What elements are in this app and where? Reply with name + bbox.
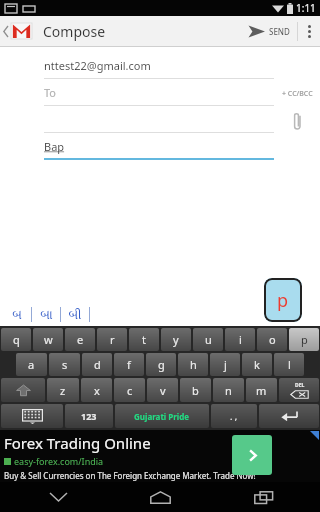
button[interactable]: h xyxy=(178,353,208,376)
button[interactable]: i xyxy=(225,328,255,351)
button[interactable]: Punctuation xyxy=(211,404,257,428)
button[interactable]: Enter xyxy=(259,404,319,428)
button[interactable]: Delete xyxy=(279,378,319,402)
staticText: y xyxy=(173,332,179,347)
staticText: s xyxy=(62,357,68,372)
button[interactable]: v xyxy=(147,378,178,402)
button[interactable]: Attach file xyxy=(286,110,308,132)
button[interactable]: k xyxy=(242,353,272,376)
button[interactable]: Home xyxy=(115,482,205,512)
button[interactable]: j xyxy=(210,353,240,376)
staticText: Forex Trading Online xyxy=(4,433,151,453)
button[interactable]: SEND xyxy=(241,16,297,46)
staticText: SEND xyxy=(269,26,290,37)
staticText: Compose xyxy=(43,22,106,41)
staticText: e xyxy=(77,332,84,347)
staticText: w xyxy=(44,332,53,347)
button[interactable]: m xyxy=(246,378,277,402)
button[interactable]: s xyxy=(49,353,80,376)
button[interactable]: p xyxy=(289,328,319,351)
button[interactable]: બા xyxy=(32,305,60,325)
button[interactable]: c xyxy=(114,378,145,402)
button[interactable]: r xyxy=(97,328,127,351)
staticText: m xyxy=(256,383,267,398)
staticText: r xyxy=(110,332,115,347)
button[interactable]: Navigate up xyxy=(0,16,34,46)
button[interactable]: u xyxy=(193,328,223,351)
staticText: Gujarati Pride xyxy=(134,411,190,422)
staticText: a xyxy=(28,357,35,372)
staticText: i xyxy=(239,332,242,347)
button[interactable]: To xyxy=(44,80,274,107)
button[interactable]: More options xyxy=(298,16,320,46)
button[interactable]: બ xyxy=(3,305,31,325)
staticText: z xyxy=(60,383,66,398)
button[interactable]: w xyxy=(33,328,63,351)
staticText: p xyxy=(301,332,308,347)
staticText: o xyxy=(269,332,276,347)
button[interactable]: Bap xyxy=(44,134,274,161)
button[interactable]: b xyxy=(180,378,211,402)
button[interactable]: l xyxy=(274,353,304,376)
staticText: b xyxy=(192,383,199,398)
staticText: બા xyxy=(40,309,53,321)
button[interactable]: q xyxy=(1,328,31,351)
staticText: d xyxy=(94,357,101,372)
button[interactable]: Change keyboard xyxy=(1,404,63,428)
staticText: j xyxy=(224,357,227,372)
staticText: v xyxy=(160,383,166,398)
staticText: p xyxy=(277,288,289,313)
staticText: easy-forex.com/India xyxy=(14,455,104,467)
button[interactable]: nttest22@gmail.com xyxy=(44,53,274,80)
button[interactable]: e xyxy=(65,328,95,351)
staticText: x xyxy=(94,383,100,398)
staticText: DEL xyxy=(295,382,305,389)
button[interactable]: y xyxy=(161,328,191,351)
staticText: c xyxy=(127,383,133,398)
staticText: 1:11 xyxy=(296,1,316,15)
staticText: + CC/BCC xyxy=(282,89,313,99)
button[interactable]: Back xyxy=(13,482,103,512)
staticText: t xyxy=(142,332,146,347)
button[interactable]: Open advertisement xyxy=(232,435,272,475)
button[interactable]: x xyxy=(81,378,112,402)
button[interactable]: t xyxy=(129,328,159,351)
staticText: g xyxy=(158,357,165,372)
button[interactable]: બી xyxy=(61,305,89,325)
button[interactable]: z xyxy=(47,378,79,402)
staticText: n xyxy=(225,383,232,398)
button[interactable]: d xyxy=(82,353,112,376)
staticText: . , xyxy=(230,410,238,422)
button[interactable]: Shift xyxy=(1,378,45,402)
staticText: u xyxy=(205,332,212,347)
button[interactable] xyxy=(44,107,274,134)
button[interactable]: Space xyxy=(115,404,209,428)
button[interactable]: a xyxy=(16,353,47,376)
staticText: q xyxy=(13,332,20,347)
staticText: બી xyxy=(68,309,82,321)
staticText: 123 xyxy=(81,410,97,422)
staticText: nttest22@gmail.com xyxy=(44,58,151,73)
staticText: બ xyxy=(12,309,22,321)
button[interactable]: n xyxy=(213,378,244,402)
button[interactable]: Numbers xyxy=(65,404,113,428)
staticText: Bap xyxy=(44,139,65,154)
button[interactable]: Forex Trading Online xyxy=(0,430,320,482)
button[interactable]: g xyxy=(146,353,176,376)
staticText: f xyxy=(127,357,131,372)
button[interactable]: p xyxy=(264,278,302,322)
button[interactable]: o xyxy=(257,328,287,351)
staticText: k xyxy=(254,357,260,372)
button[interactable]: f xyxy=(114,353,144,376)
button[interactable]: Recent apps xyxy=(218,482,308,512)
staticText: Buy & Sell Currencies on The Foreign Exc… xyxy=(4,470,256,481)
staticText: h xyxy=(190,357,197,372)
staticText: To xyxy=(44,85,57,100)
staticText: l xyxy=(288,357,291,372)
